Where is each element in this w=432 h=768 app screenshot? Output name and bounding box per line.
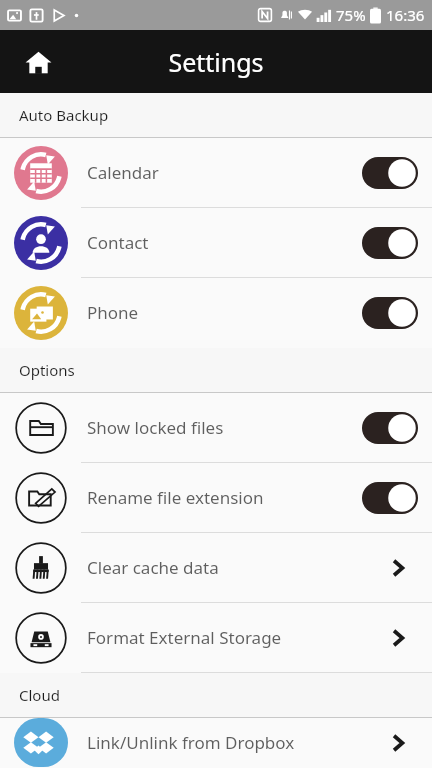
staticText: Link/Unlink from Dropbox [87,731,378,754]
staticText: Phone [87,301,362,324]
button[interactable]: Rename file extension [0,463,432,533]
staticText: 75% [336,5,366,25]
button[interactable]: Toggle [362,157,418,189]
button[interactable]: Toggle [362,482,418,514]
staticText: Clear cache data [87,556,378,579]
staticText: Options [19,360,75,380]
button[interactable]: Show locked files [0,393,432,463]
button[interactable]: Toggle [362,412,418,444]
button[interactable]: Toggle [362,297,418,329]
button[interactable]: Format External Storage [0,603,432,673]
staticText: Settings [168,45,264,79]
button[interactable]: Home [14,38,62,86]
button[interactable]: Open [378,618,418,658]
staticText: Auto Backup [19,105,109,125]
staticText: Cloud [19,685,60,705]
button[interactable]: Open [378,723,418,763]
button[interactable]: Phone [0,278,432,348]
staticText: Calendar [87,161,362,184]
staticText: Format External Storage [87,626,378,649]
button[interactable]: Calendar [0,138,432,208]
staticText: 16:36 [386,5,425,25]
button[interactable]: Toggle [362,227,418,259]
staticText: Rename file extension [87,486,362,509]
button[interactable]: Clear cache data [0,533,432,603]
staticText: Show locked files [87,416,362,439]
button[interactable]: Link/Unlink from Dropbox [0,718,432,768]
button[interactable]: Open [378,548,418,588]
button[interactable]: Contact [0,208,432,278]
staticText: Contact [87,231,362,254]
